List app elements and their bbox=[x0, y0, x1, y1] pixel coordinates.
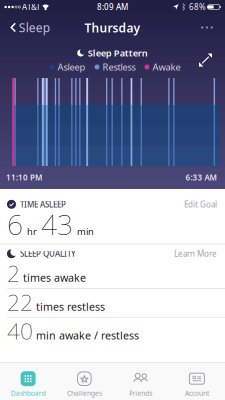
staticText: AT&T bbox=[22, 2, 40, 12]
button[interactable]: Sleep bbox=[2, 15, 50, 39]
staticText: Challenges bbox=[67, 389, 102, 398]
button[interactable]: Dashboard bbox=[0, 363, 56, 400]
staticText: 6:33 AM bbox=[185, 172, 216, 183]
staticText: Account bbox=[185, 389, 209, 398]
button[interactable]: Account bbox=[169, 363, 225, 400]
staticText: 22 times restless bbox=[7, 287, 105, 317]
staticText: SLEEP QUALITY bbox=[20, 248, 76, 259]
staticText: TIME ASLEEP bbox=[20, 199, 66, 210]
button[interactable]: Edit Goal bbox=[181, 198, 220, 211]
staticText: 68% bbox=[189, 2, 206, 12]
staticText: Sleep bbox=[19, 19, 50, 35]
staticText: 40 min awake / restless bbox=[7, 316, 139, 346]
button[interactable]: Learn More bbox=[171, 247, 220, 260]
staticText: Learn More bbox=[174, 248, 217, 259]
staticText: 6 hr 43 min bbox=[7, 205, 94, 243]
staticText: Asleep bbox=[57, 61, 85, 73]
staticText: 2 times awake bbox=[7, 258, 86, 288]
staticText: Edit Goal bbox=[184, 199, 217, 210]
staticText: 8:09 AM bbox=[97, 2, 128, 12]
staticText: Awake bbox=[152, 61, 180, 73]
staticText: Restless bbox=[102, 61, 135, 73]
staticText: 11:10 PM bbox=[6, 172, 42, 183]
staticText: Sleep Pattern bbox=[88, 47, 148, 59]
staticText: Friends bbox=[129, 389, 152, 398]
button[interactable]: More bbox=[197, 22, 217, 33]
staticText: Thursday bbox=[84, 20, 140, 36]
button[interactable]: Friends bbox=[112, 363, 169, 400]
staticText: Dashboard bbox=[11, 389, 46, 398]
staticText: ᛒ bbox=[181, 3, 186, 11]
button[interactable]: Challenges bbox=[56, 363, 112, 400]
button[interactable]: Expand chart bbox=[199, 53, 212, 66]
